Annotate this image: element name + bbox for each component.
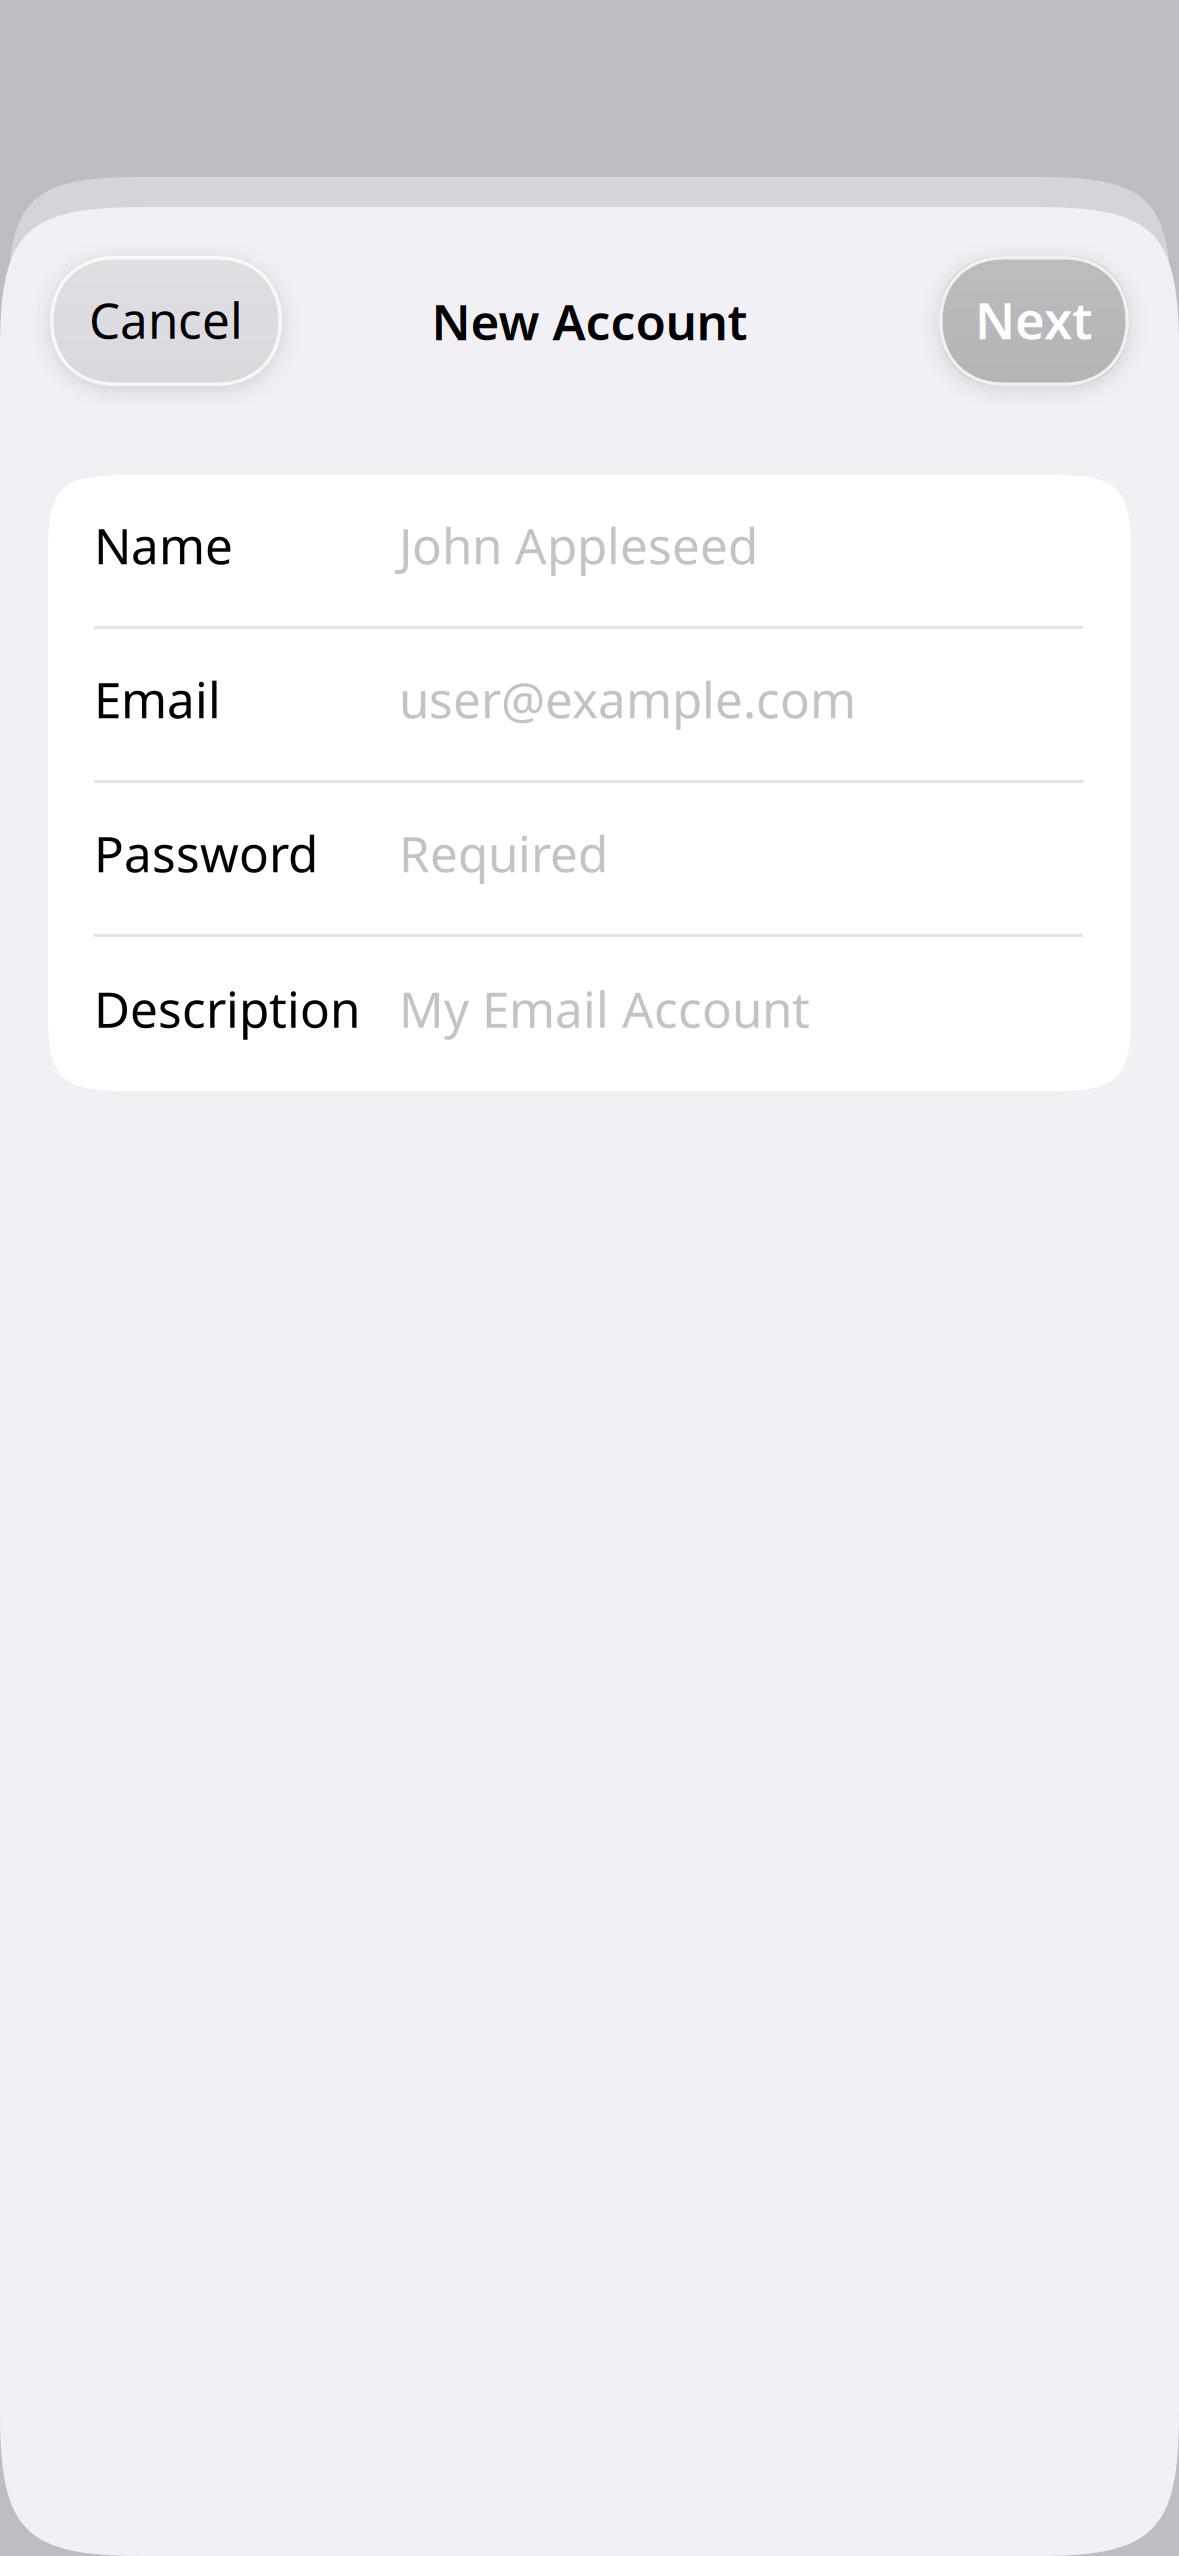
staticText: New Account (431, 288, 747, 354)
staticText: Required (399, 820, 608, 886)
staticText: Cancel (89, 287, 243, 352)
staticText: Name (94, 512, 233, 578)
button[interactable]: Description (48, 937, 1131, 1091)
staticText: John Appleseed (399, 512, 758, 578)
button[interactable]: Name (48, 475, 1131, 629)
staticText: Description (94, 976, 360, 1041)
button[interactable]: Password (48, 783, 1131, 937)
staticText: Next (975, 286, 1093, 353)
staticText: user@example.com (399, 666, 856, 732)
staticText: My Email Account (399, 976, 810, 1041)
staticText: Email (94, 666, 221, 732)
button[interactable]: Next (939, 256, 1129, 386)
button[interactable]: Cancel (50, 256, 282, 386)
button[interactable]: Email (48, 629, 1131, 783)
staticText: Password (94, 820, 318, 886)
